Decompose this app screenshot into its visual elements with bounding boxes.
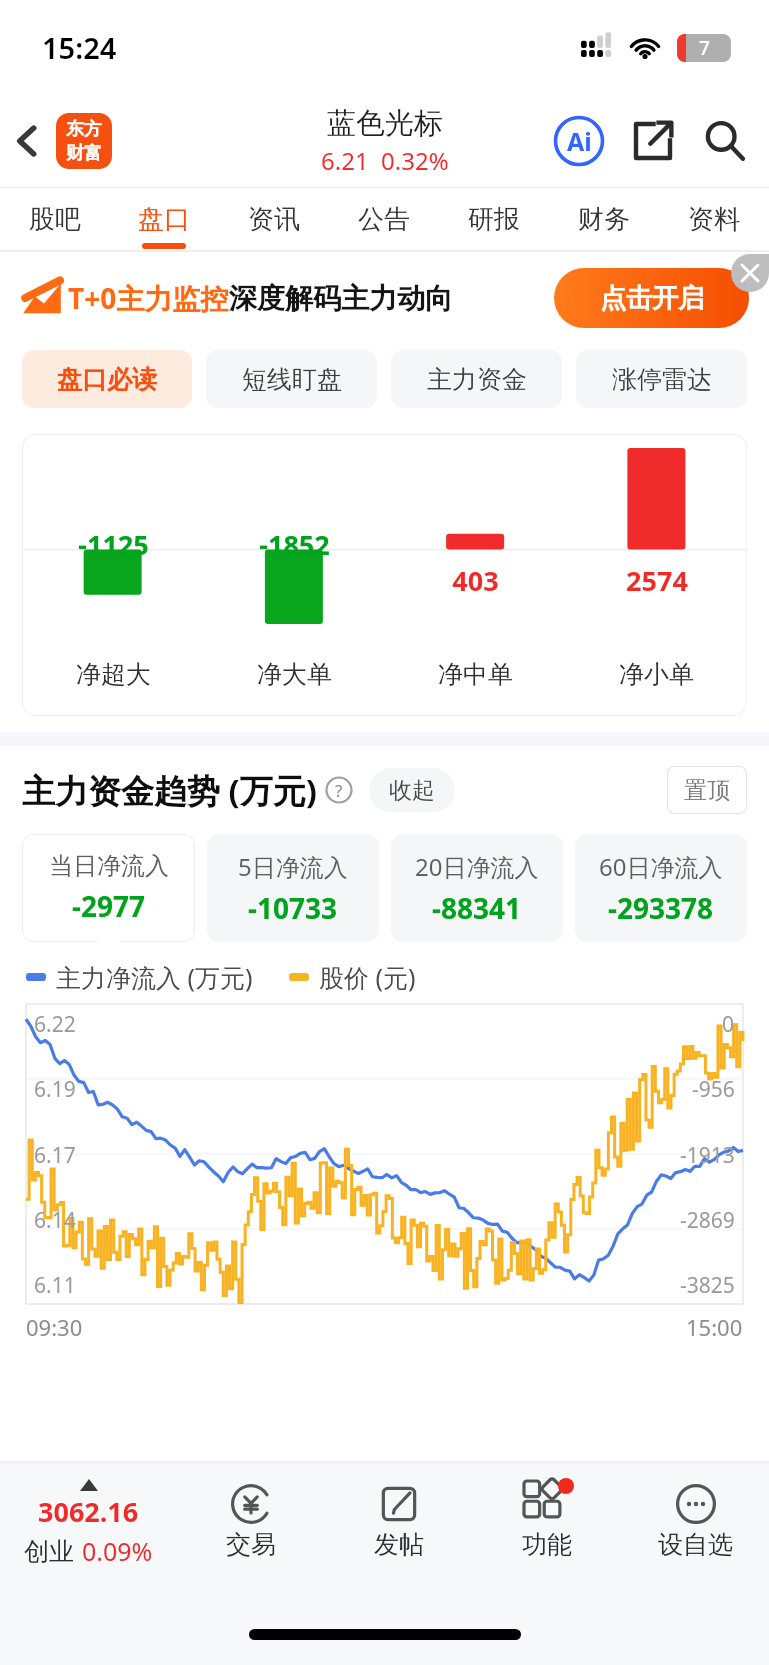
button[interactable]: East Money home [56, 113, 112, 169]
staticText: 3062.16 [38, 1493, 139, 1530]
button[interactable]: 财务 [549, 188, 659, 250]
button[interactable]: 资料 [659, 188, 769, 250]
button[interactable]: 股吧 [0, 188, 109, 250]
staticText: 短线盯盘 [242, 364, 342, 395]
button[interactable]: 收起 [369, 768, 455, 812]
button[interactable]: Help [325, 776, 353, 804]
staticText: 净中单 [438, 659, 513, 690]
button[interactable]: 20日净流入 [391, 834, 563, 942]
button[interactable]: 设自选 [621, 1463, 769, 1603]
staticText: 15:00 [686, 1312, 743, 1342]
staticText: 6.19 [34, 1075, 76, 1104]
button[interactable]: 发帖 [325, 1463, 473, 1603]
staticText: 股价 (元) [319, 960, 416, 994]
staticText: 6.21 0.32% [321, 144, 449, 177]
button[interactable]: 置顶 [667, 766, 747, 814]
staticText: 收起 [389, 776, 435, 805]
staticText: 15:24 [42, 28, 117, 67]
staticText: 2574 [626, 562, 688, 599]
staticText: 60日净流入 [599, 850, 723, 883]
staticText: ? [335, 779, 343, 802]
button[interactable]: 盘口 [109, 188, 219, 250]
button[interactable]: 研报 [439, 188, 549, 250]
button[interactable]: 交易 [176, 1463, 325, 1603]
staticText: 净超大 [76, 659, 151, 690]
staticText: 20日净流入 [415, 850, 539, 883]
button[interactable]: 功能 [473, 1463, 621, 1603]
staticText: 主力资金 [427, 364, 527, 395]
staticText: 盘口 [138, 203, 190, 236]
button[interactable]: Back [0, 111, 54, 171]
button[interactable]: AI assistant [553, 115, 605, 167]
staticText: -2869 [680, 1206, 735, 1235]
staticText: 09:30 [26, 1312, 83, 1342]
staticText: 功能 [522, 1529, 572, 1560]
staticText: -2977 [72, 887, 146, 925]
button[interactable]: 盘口必读 [22, 350, 192, 408]
staticText: -1913 [680, 1141, 735, 1170]
staticText: 净小单 [619, 659, 694, 690]
staticText: 0 [722, 1010, 735, 1039]
staticText: 东方 [66, 118, 102, 141]
staticText: 7 [699, 35, 710, 61]
staticText: 创业 [24, 1536, 74, 1567]
staticText: 6.17 [34, 1141, 76, 1170]
button[interactable]: 3062.16 [0, 1463, 176, 1603]
button[interactable]: 短线盯盘 [206, 350, 377, 408]
staticText: 盘口必读 [57, 364, 157, 395]
button[interactable]: Share [629, 117, 677, 165]
staticText: 5日净流入 [238, 850, 348, 883]
staticText: 蓝色光标 [327, 105, 443, 142]
staticText: 财务 [578, 203, 630, 236]
staticText: 设自选 [658, 1529, 733, 1560]
staticText: 涨停雷达 [612, 364, 712, 395]
staticText: 当日净流入 [49, 851, 169, 881]
staticText: 研报 [468, 203, 520, 236]
staticText: 主力净流入 (万元) [56, 960, 253, 994]
staticText: 置顶 [684, 776, 730, 805]
button[interactable]: 涨停雷达 [576, 350, 747, 408]
button[interactable]: 资讯 [219, 188, 329, 250]
staticText: -88341 [432, 889, 522, 927]
button[interactable]: Search [701, 117, 749, 165]
staticText: -293378 [608, 889, 714, 927]
button[interactable]: 点击开启 [554, 268, 749, 328]
staticText: 6.11 [34, 1271, 76, 1300]
staticText: -10733 [248, 889, 338, 927]
staticText: -1125 [78, 526, 149, 563]
staticText: -1852 [259, 526, 330, 563]
staticText: 股吧 [29, 203, 81, 236]
button[interactable]: 5日净流入 [207, 834, 379, 942]
staticText: 点击开启 [600, 282, 704, 315]
staticText: T+0主力监控 [68, 279, 229, 317]
staticText: 主力资金趋势 (万元) [22, 768, 317, 813]
staticText: 交易 [226, 1529, 276, 1560]
staticText: 资料 [688, 203, 740, 236]
staticText: 6.22 [34, 1010, 76, 1039]
button[interactable]: Close banner [731, 254, 769, 292]
staticText: 深度解码主力动向 [229, 281, 453, 316]
staticText: 资讯 [248, 203, 300, 236]
staticText: 公告 [358, 203, 410, 236]
staticText: -3825 [680, 1271, 735, 1300]
staticText: Ai [567, 124, 592, 158]
button[interactable]: 当日净流入 [22, 834, 195, 942]
button[interactable]: 公告 [329, 188, 439, 250]
staticText: -956 [692, 1075, 735, 1104]
staticText: 净大单 [257, 659, 332, 690]
button[interactable]: 60日净流入 [575, 834, 747, 942]
staticText: 0.09% [82, 1534, 153, 1568]
staticText: 财富 [66, 142, 102, 165]
staticText: 6.14 [34, 1206, 76, 1235]
staticText: 403 [452, 562, 499, 599]
button[interactable]: 主力资金 [391, 350, 562, 408]
staticText: 发帖 [374, 1529, 424, 1560]
